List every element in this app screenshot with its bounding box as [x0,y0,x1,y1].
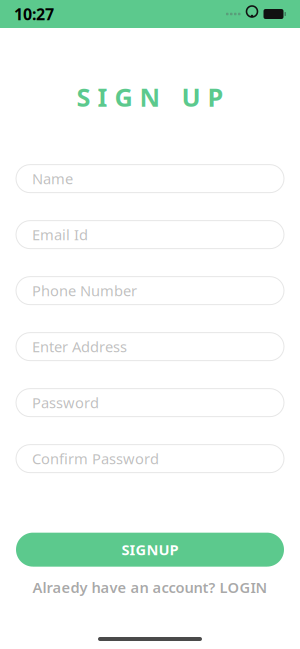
staticText: Password [32,393,99,412]
staticText: Alraedy have an account? LOGIN [32,578,267,597]
button[interactable]: Alraedy have an account? LOGIN [16,573,283,602]
staticText: Confirm Password [32,449,159,468]
staticText: Name [32,169,73,188]
button[interactable]: Enter Address [16,333,284,361]
staticText: SIGNUP [121,540,178,559]
button[interactable]: SIGNUP [16,533,284,567]
button[interactable]: Email Id [16,221,284,249]
staticText: Enter Address [32,337,127,356]
staticText: S I G N U P [76,80,223,114]
button[interactable]: Confirm Password [16,445,284,473]
staticText: Phone Number [32,281,137,300]
button[interactable]: Password [16,389,284,417]
button[interactable]: Phone Number [16,277,284,305]
staticText: 10:27 [14,3,54,25]
staticText: Email Id [32,225,88,244]
button[interactable]: Name [16,165,284,193]
